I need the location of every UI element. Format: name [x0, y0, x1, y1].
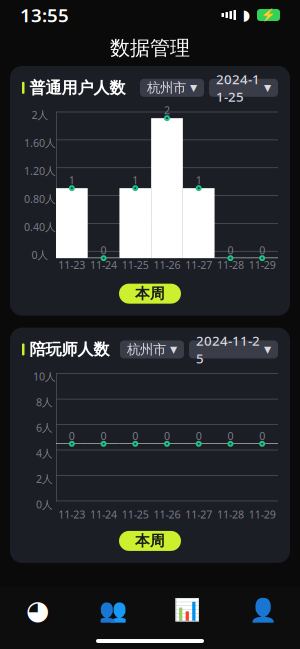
staticText: 0	[259, 429, 265, 443]
staticText: 0	[101, 429, 107, 443]
staticText: ◕	[26, 595, 49, 625]
staticText: 13:55	[20, 3, 69, 27]
staticText: 本周	[135, 285, 165, 303]
button[interactable]: 杭州市	[120, 340, 184, 358]
button[interactable]: 本周	[119, 531, 181, 551]
button[interactable]: Users	[75, 588, 150, 632]
staticText: ⚡	[261, 8, 276, 22]
staticText: 0	[227, 429, 233, 443]
staticText: 11-23	[58, 258, 85, 272]
staticText: 11-29	[249, 258, 276, 272]
staticText: 4人	[36, 446, 53, 460]
staticText: 0	[164, 429, 170, 443]
staticText: 👤	[248, 597, 276, 623]
button[interactable]: Profile	[225, 588, 300, 632]
staticText: 📊	[174, 598, 201, 622]
button[interactable]: 本周	[119, 284, 181, 304]
staticText: ◗	[242, 7, 250, 23]
staticText: ▼	[264, 82, 271, 93]
staticText: 0	[132, 429, 138, 443]
staticText: 1	[132, 173, 138, 187]
staticText: 0	[227, 243, 233, 257]
staticText: 11-25	[122, 258, 149, 272]
button[interactable]: Statistics	[150, 588, 225, 632]
staticText: 0	[69, 429, 75, 443]
staticText: 本周	[135, 532, 165, 550]
staticText: 11-27	[185, 258, 212, 272]
staticText: 6人	[36, 420, 53, 435]
staticText: 0.80人	[24, 192, 56, 206]
staticText: 2人	[31, 108, 48, 122]
staticText: ▼	[170, 344, 177, 355]
button[interactable]: 2024-11-25	[209, 79, 278, 97]
staticText: 11-29	[249, 507, 276, 521]
staticText: 8人	[36, 395, 53, 409]
staticText: 1.20人	[24, 164, 56, 178]
staticText: 杭州市	[147, 80, 186, 96]
staticText: 陪玩师人数	[29, 340, 109, 359]
staticText: 11-25	[122, 507, 149, 521]
staticText: 11-26	[153, 507, 180, 521]
staticText: 杭州市	[127, 341, 166, 358]
staticText: 0人	[36, 497, 53, 511]
staticText: 2	[164, 103, 170, 117]
button[interactable]: 2024-11-25	[189, 340, 278, 358]
staticText: ▼	[190, 82, 197, 93]
staticText: 0.40人	[24, 220, 56, 234]
staticText: 11-23	[58, 507, 85, 521]
staticText: 11-27	[185, 507, 212, 521]
staticText: 2人	[36, 472, 53, 486]
staticText: 11-28	[217, 258, 244, 272]
staticText: 0	[101, 243, 107, 257]
staticText: 普通用户人数	[29, 78, 125, 98]
staticText: 2024-11-25	[216, 70, 260, 105]
staticText: 0	[259, 243, 265, 257]
staticText: 0	[196, 429, 202, 443]
staticText: 1	[69, 173, 75, 187]
staticText: 11-26	[153, 258, 180, 272]
staticText: 👥	[98, 597, 126, 623]
staticText: 11-24	[90, 258, 117, 272]
staticText: 11-24	[90, 507, 117, 521]
staticText: 11-28	[217, 507, 244, 521]
staticText: 2024-11-25	[196, 332, 260, 367]
staticText: 数据管理	[110, 36, 190, 60]
staticText: ▼	[264, 344, 271, 355]
button[interactable]: Dashboard	[0, 588, 75, 632]
staticText: 1.60人	[24, 136, 56, 150]
button[interactable]: 杭州市	[140, 79, 204, 97]
staticText: 1	[196, 173, 202, 187]
staticText: 10人	[33, 369, 56, 383]
staticText: 0人	[31, 248, 48, 262]
